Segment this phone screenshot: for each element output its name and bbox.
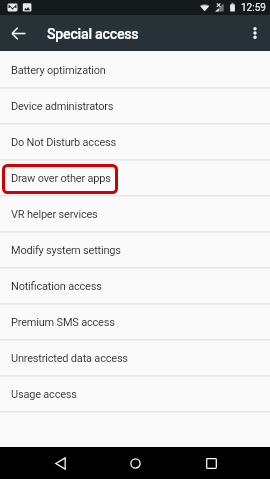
button[interactable]: Home — [119, 447, 151, 479]
staticText: Premium SMS access — [11, 316, 115, 329]
staticText: 12:59 — [241, 2, 266, 14]
button[interactable]: Device administrators — [0, 88, 270, 124]
staticText: VR helper services — [11, 208, 98, 221]
button[interactable]: Premium SMS access — [0, 304, 270, 340]
button[interactable]: Navigate up — [0, 15, 36, 51]
staticText: Draw over other apps — [11, 172, 111, 185]
button[interactable]: Draw over other apps — [0, 160, 270, 196]
staticText: Unrestricted data access — [11, 352, 128, 365]
button[interactable]: VR helper services — [0, 196, 270, 232]
button[interactable]: Battery optimization — [0, 52, 270, 88]
button[interactable]: Usage access — [0, 376, 270, 412]
button[interactable]: Modify system settings — [0, 232, 270, 268]
staticText: Device administrators — [11, 100, 114, 113]
button[interactable]: Do Not Disturb access — [0, 124, 270, 160]
staticText: Modify system settings — [11, 244, 121, 257]
staticText: Usage access — [11, 388, 77, 401]
staticText: Notification access — [11, 280, 102, 293]
button[interactable]: Notification access — [0, 268, 270, 304]
button[interactable]: More options — [234, 15, 270, 51]
staticText: Do Not Disturb access — [11, 136, 117, 149]
staticText: Special access — [47, 26, 139, 43]
staticText: Battery optimization — [11, 64, 106, 77]
button[interactable]: Back — [44, 447, 76, 479]
button[interactable]: Unrestricted data access — [0, 340, 270, 376]
button[interactable]: Recent apps — [195, 447, 227, 479]
